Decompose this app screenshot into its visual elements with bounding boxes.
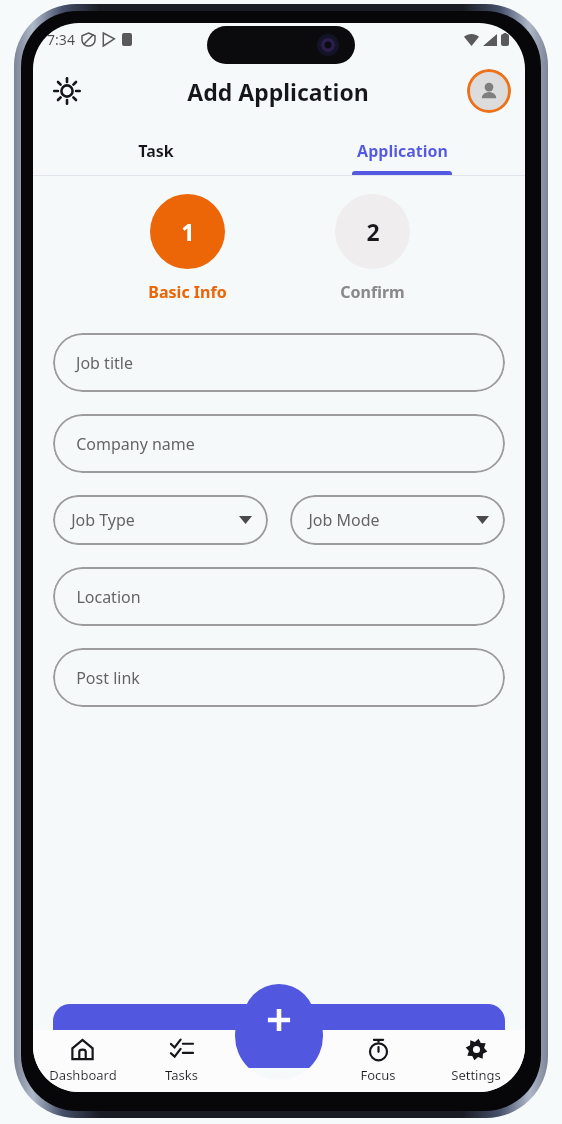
staticText: Add Application (187, 76, 369, 107)
button[interactable]: Post link (53, 648, 505, 707)
staticText: Settings (451, 1066, 501, 1084)
button[interactable]: Job title (53, 333, 505, 392)
staticText: Task (138, 140, 174, 162)
button[interactable]: Focus (329, 1030, 427, 1092)
staticText: 1 (181, 216, 195, 247)
button[interactable]: 1 (148, 194, 227, 303)
button[interactable]: Tasks (132, 1030, 231, 1092)
staticText: Company name (76, 433, 195, 455)
button[interactable]: Profile (467, 69, 511, 113)
staticText: Basic Info (148, 281, 227, 303)
staticText: Job title (76, 352, 133, 374)
button[interactable]: Job Mode (290, 495, 505, 545)
button[interactable]: Next (53, 1004, 505, 1068)
staticText: Focus (360, 1066, 396, 1084)
button[interactable]: Location (53, 567, 505, 626)
staticText: Post link (76, 667, 140, 689)
staticText: Next (257, 1024, 301, 1049)
button[interactable]: Company name (53, 414, 505, 473)
button[interactable]: Settings (427, 1030, 525, 1092)
button[interactable]: Add (243, 984, 315, 1056)
staticText: Location (76, 586, 141, 608)
staticText: Job Mode (308, 509, 380, 531)
button[interactable]: Job Type (53, 495, 268, 545)
staticText: 7:34 (47, 30, 75, 49)
staticText: Tasks (165, 1066, 198, 1084)
staticText: Confirm (340, 281, 405, 303)
button[interactable]: 2 (335, 194, 410, 303)
staticText: 2 (366, 216, 380, 247)
button[interactable]: Dashboard (33, 1030, 132, 1092)
staticText: Application (357, 140, 448, 162)
button[interactable]: Task (33, 127, 279, 175)
staticText: Job Type (71, 509, 135, 531)
button[interactable]: Application (279, 127, 525, 175)
staticText: Dashboard (49, 1066, 117, 1084)
button[interactable]: Toggle theme (45, 69, 89, 113)
